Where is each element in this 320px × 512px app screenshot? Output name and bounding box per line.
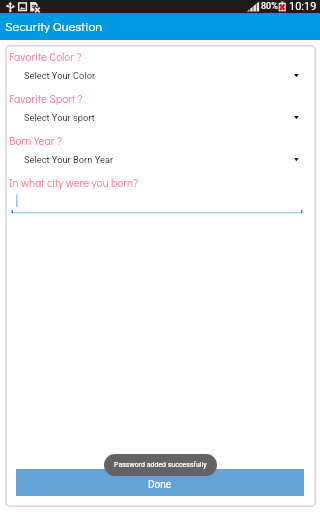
button[interactable]: Done [16, 469, 304, 496]
staticText: Select Your Color [24, 70, 96, 81]
staticText: Favorite Color ? [9, 49, 82, 64]
staticText: Select Your Born Year [24, 154, 114, 165]
staticText: In what city were you born? [9, 175, 139, 190]
staticText: Born Year ? [9, 133, 63, 148]
staticText: Select Your sport [24, 112, 95, 123]
button[interactable]: Favorite Sport ? [5, 89, 316, 131]
button[interactable]: Born Year ? [5, 131, 316, 173]
staticText: Favorite Sport ? [9, 91, 83, 106]
button[interactable]: In what city were you born? [5, 173, 316, 215]
button[interactable]: Security Question [0, 13, 320, 40]
staticText: 80% [261, 1, 278, 12]
staticText: Done [148, 479, 172, 491]
staticText: Security Question [5, 17, 103, 34]
staticText: 10:19 [289, 0, 317, 13]
button[interactable]: Favorite Color ? [5, 47, 316, 89]
staticText: Password added successfully [114, 461, 207, 469]
